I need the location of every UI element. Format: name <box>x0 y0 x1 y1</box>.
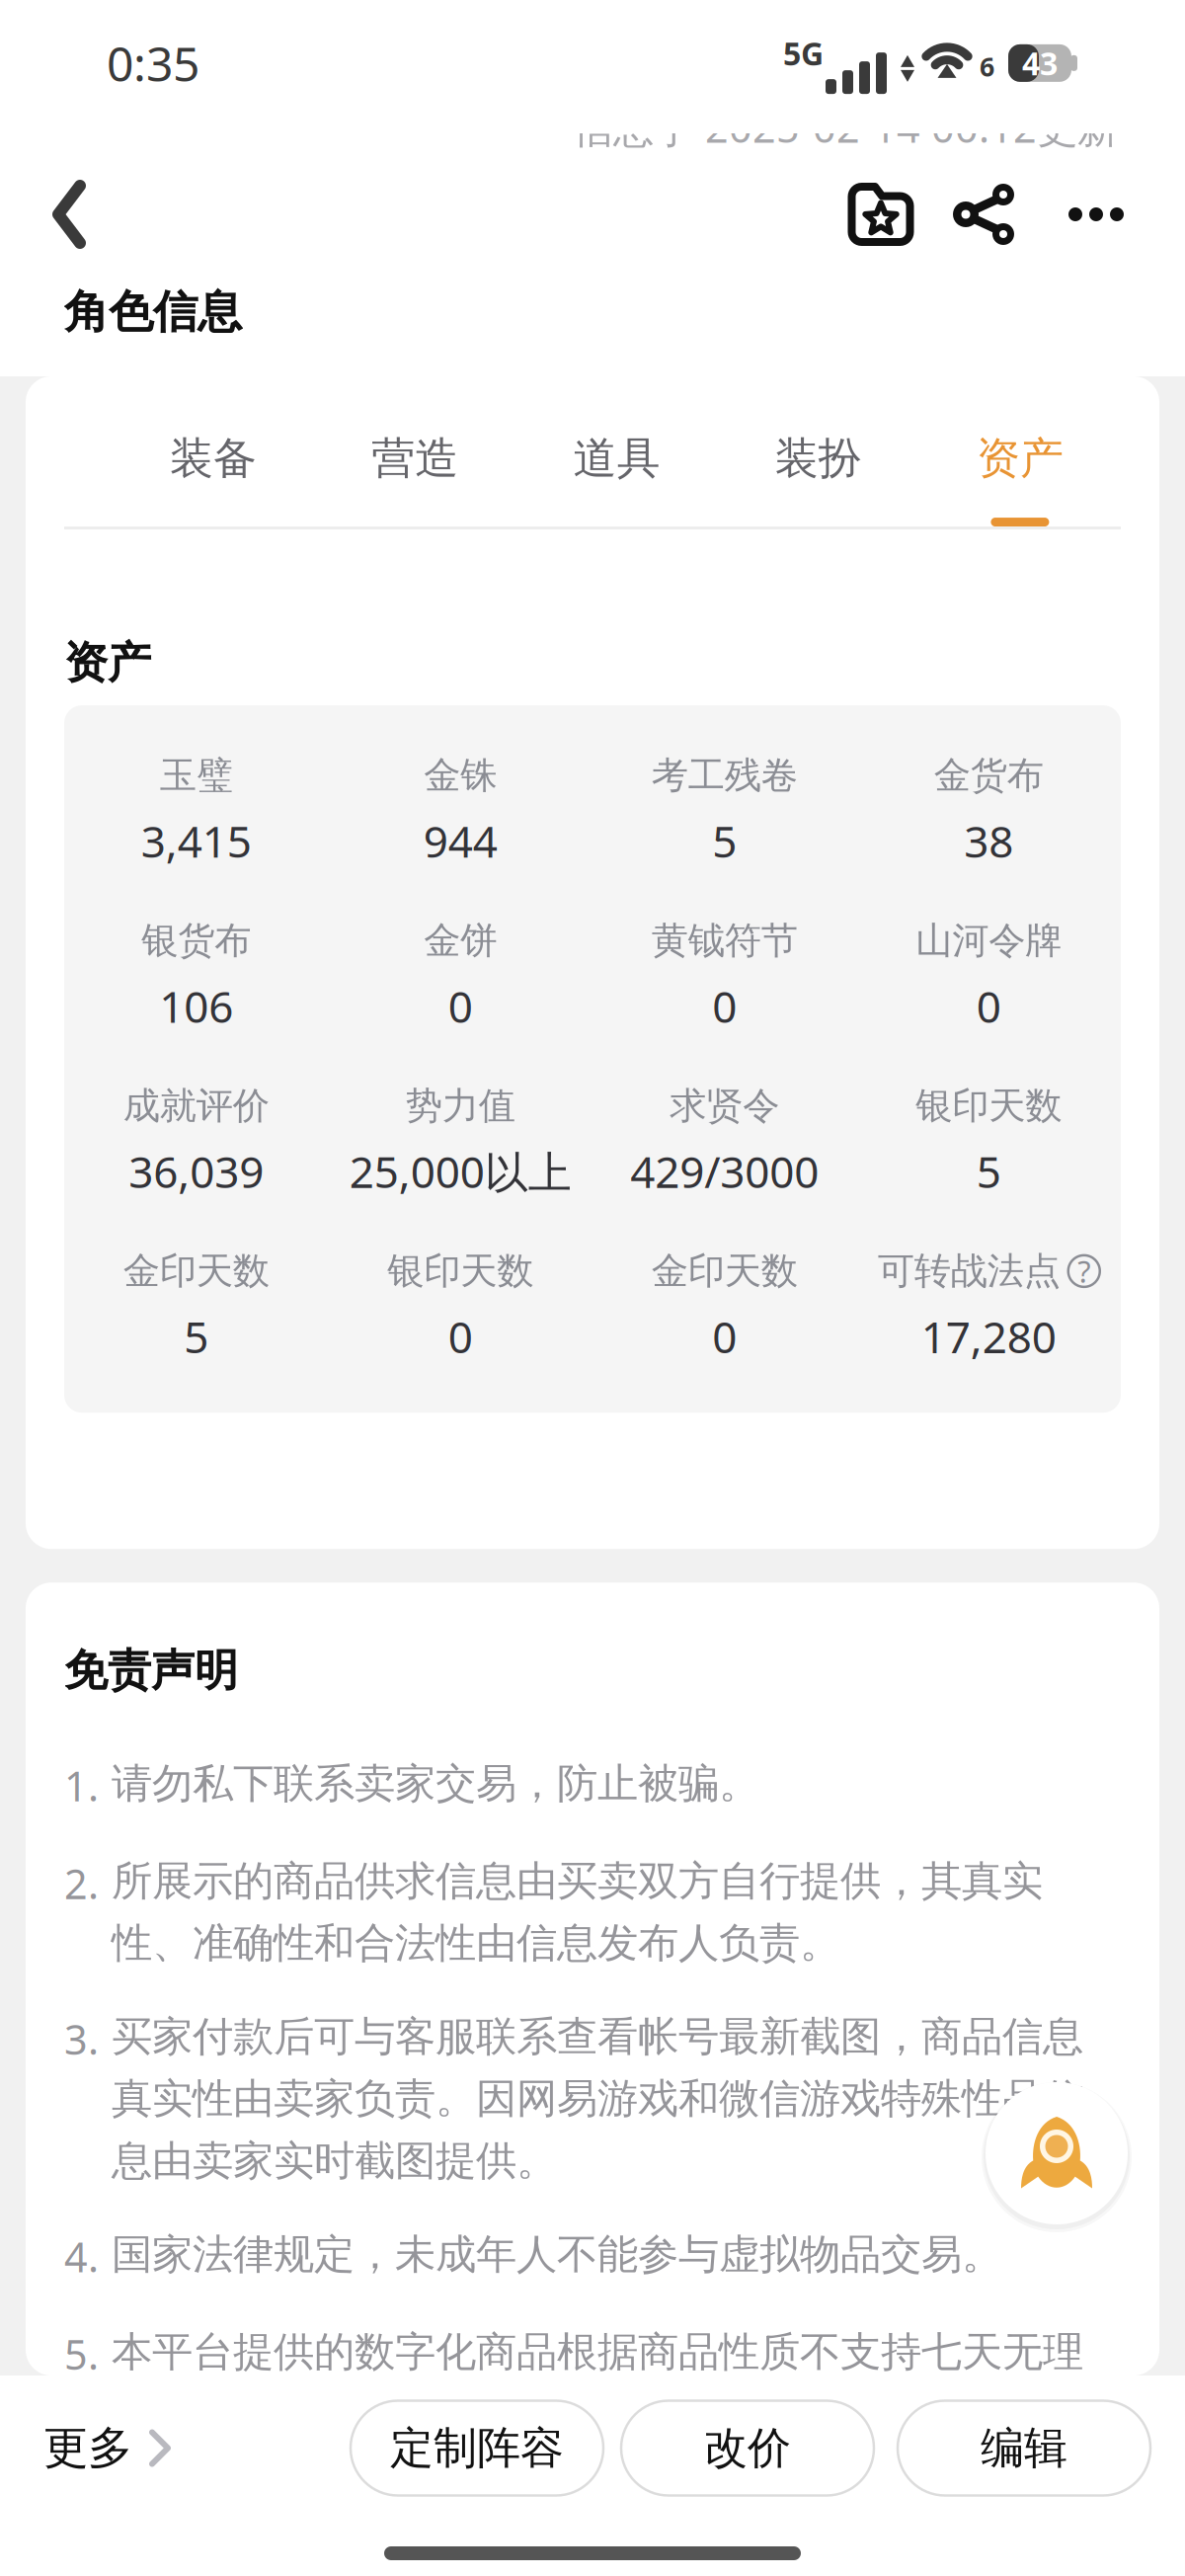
staticText: 营造 <box>372 432 458 485</box>
staticText: 5 <box>976 1142 1001 1200</box>
staticText: 0 <box>976 977 1001 1035</box>
staticText: 买家付款后可与客服联系查看帐号最新截图，商品信息真实性由卖家负责。因网易游戏和微… <box>112 2012 1083 2186</box>
button[interactable]: Share <box>938 169 1029 260</box>
staticText: 106 <box>159 977 233 1035</box>
button[interactable]: Back <box>30 158 109 271</box>
button[interactable]: 定制阵容 <box>351 2401 603 2495</box>
staticText: 银货布 <box>141 918 251 963</box>
button[interactable]: 更多 <box>39 2399 172 2497</box>
staticText: ? <box>1078 1251 1090 1291</box>
staticText: 0 <box>712 1308 737 1365</box>
button[interactable]: Customer service <box>978 2074 1136 2232</box>
staticText: 4. <box>64 2229 99 2284</box>
staticText: 编辑 <box>981 2421 1067 2475</box>
staticText: 5G <box>783 32 824 74</box>
button[interactable]: 编辑 <box>898 2401 1150 2495</box>
staticText: 金印天数 <box>123 1248 269 1294</box>
button[interactable]: 改价 <box>621 2401 874 2495</box>
staticText: 43 <box>1022 42 1058 84</box>
staticText: 银印天数 <box>387 1248 533 1294</box>
staticText: 可转战法点 <box>878 1248 1060 1294</box>
staticText: 0 <box>448 1308 473 1365</box>
staticText: 944 <box>423 812 498 869</box>
button[interactable]: 资产 <box>919 376 1121 526</box>
button[interactable]: 道具 <box>516 376 718 526</box>
staticText: 定制阵容 <box>390 2421 564 2475</box>
staticText: 考工残卷 <box>652 753 798 798</box>
staticText: 25,000以上 <box>349 1142 572 1200</box>
staticText: 装扮 <box>775 432 862 485</box>
staticText: 5. <box>64 2327 99 2381</box>
staticText: 3,415 <box>141 812 252 869</box>
staticText: 3. <box>64 2012 99 2066</box>
staticText: 求贤令 <box>670 1083 779 1129</box>
staticText: 5 <box>712 812 737 869</box>
staticText: 金铢 <box>424 753 497 798</box>
staticText: 信息于 2025-02-14 00:12更新 <box>573 100 1118 154</box>
staticText: 1. <box>64 1758 99 1813</box>
button[interactable]: Collect <box>822 169 912 260</box>
staticText: 势力值 <box>406 1083 515 1129</box>
staticText: 0 <box>448 977 473 1035</box>
staticText: 0 <box>712 977 737 1035</box>
staticText: 玉璧 <box>160 753 233 798</box>
staticText: 17,280 <box>921 1308 1056 1365</box>
staticText: 38 <box>964 812 1013 869</box>
staticText: 银印天数 <box>916 1083 1062 1129</box>
staticText: 金印天数 <box>652 1248 798 1294</box>
staticText: 资产 <box>977 432 1063 485</box>
staticText: 黄钺符节 <box>652 918 798 963</box>
staticText: 5 <box>184 1308 209 1365</box>
staticText: 金货布 <box>934 753 1044 798</box>
staticText: 成就评价 <box>123 1083 269 1129</box>
staticText: 装备 <box>170 432 257 485</box>
staticText: 国家法律规定，未成年人不能参与虚拟物品交易。 <box>112 2229 1002 2279</box>
button[interactable]: 装备 <box>113 376 314 526</box>
staticText: 免责声明 <box>64 1644 238 1697</box>
staticText: 所展示的商品供求信息由买卖双方自行提供，其真实性、准确性和合法性由信息发布人负责… <box>112 1856 1043 1968</box>
staticText: 角色信息 <box>64 284 242 339</box>
staticText: 2. <box>64 1856 99 1910</box>
staticText: 6 <box>980 49 994 84</box>
button[interactable]: 营造 <box>314 376 516 526</box>
staticText: 金饼 <box>424 918 497 963</box>
staticText: 本平台提供的数字化商品根据商品性质不支持七天无理 <box>112 2327 1083 2377</box>
staticText: 36,039 <box>129 1142 264 1200</box>
staticText: 改价 <box>704 2421 791 2475</box>
button[interactable]: More options <box>1051 169 1142 260</box>
staticText: 资产 <box>64 636 151 689</box>
button[interactable]: 装扮 <box>718 376 919 526</box>
staticText: 请勿私下联系卖家交易，防止被骗。 <box>112 1758 759 1809</box>
staticText: 山河令牌 <box>916 918 1062 963</box>
staticText: 道具 <box>573 432 660 485</box>
staticText: 429/3000 <box>630 1142 819 1200</box>
staticText: 更多 <box>43 2421 132 2476</box>
staticText: 0:35 <box>107 32 199 95</box>
